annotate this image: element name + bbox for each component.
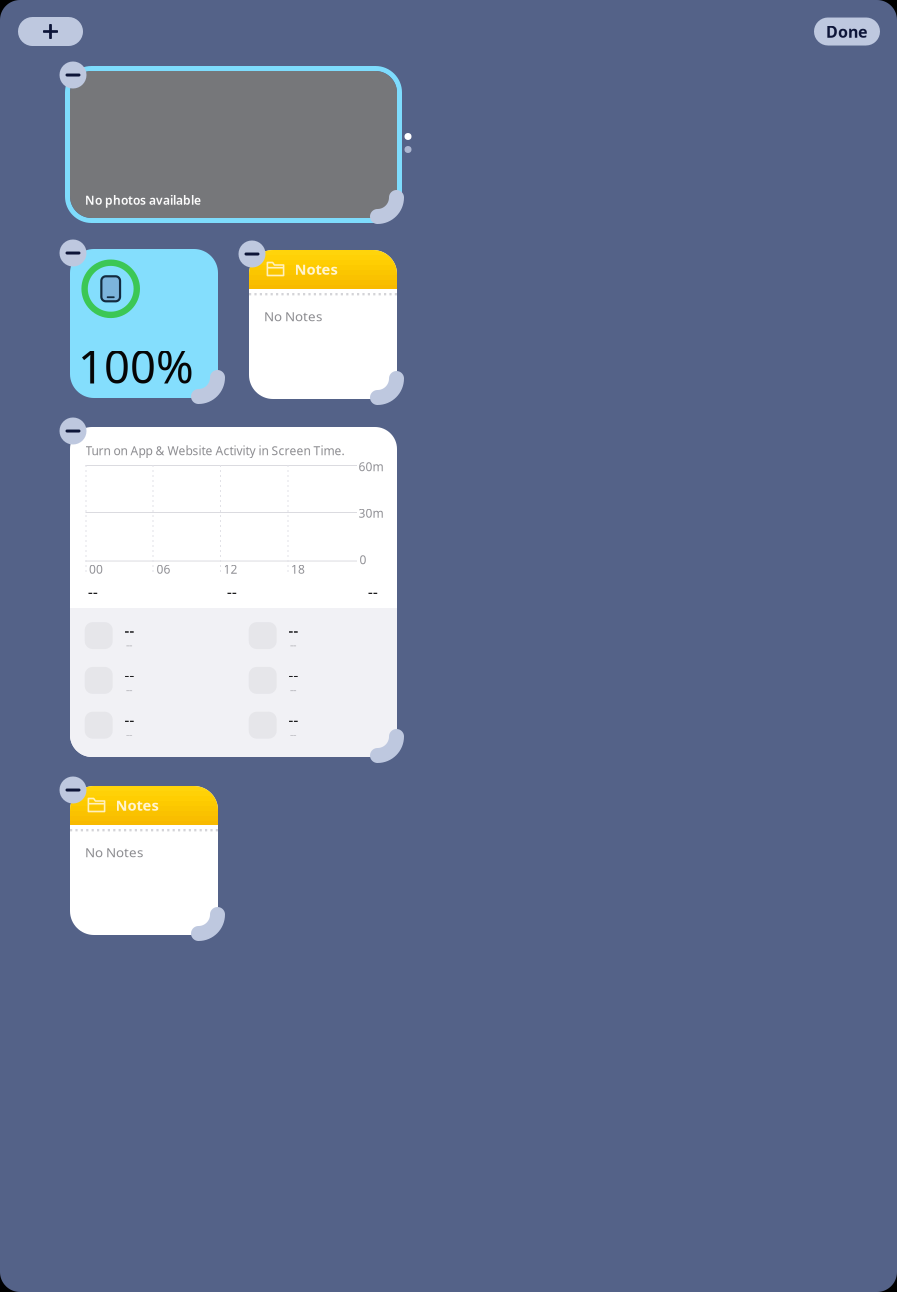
staticText: --: [288, 665, 298, 685]
button[interactable]: Resize widget: [168, 884, 228, 944]
button[interactable]: Remove widget: [59, 239, 86, 266]
button[interactable]: Remove widget: [238, 240, 265, 267]
staticText: --: [288, 710, 298, 729]
staticText: 06: [156, 561, 170, 577]
button[interactable]: Resize widget: [347, 167, 407, 227]
staticText: 30m: [358, 505, 383, 521]
staticText: 60m: [358, 458, 383, 474]
staticText: --: [227, 582, 237, 601]
button[interactable]: Remove widget: [59, 61, 86, 88]
staticText: --: [126, 638, 132, 652]
staticText: No photos available: [85, 192, 201, 208]
staticText: Notes: [115, 795, 158, 815]
button[interactable]: Done: [814, 17, 880, 45]
button[interactable]: Resize widget: [347, 348, 407, 408]
staticText: --: [290, 683, 296, 697]
button[interactable]: Add widget: [18, 17, 83, 46]
staticText: Notes: [294, 259, 337, 279]
staticText: --: [124, 620, 134, 640]
staticText: --: [124, 665, 134, 685]
staticText: --: [290, 638, 296, 652]
staticText: 12: [223, 561, 237, 577]
staticText: 18: [291, 561, 305, 577]
staticText: --: [288, 620, 298, 640]
staticText: Turn on App & Website Activity in Screen…: [85, 442, 344, 458]
staticText: No Notes: [264, 307, 322, 325]
staticText: No Notes: [85, 843, 143, 861]
staticText: --: [126, 727, 132, 742]
staticText: Done: [826, 21, 868, 42]
staticText: --: [88, 582, 98, 601]
button[interactable]: Resize widget: [168, 347, 228, 407]
button[interactable]: Resize widget: [347, 706, 407, 766]
staticText: --: [124, 710, 134, 729]
button[interactable]: Remove widget: [59, 417, 86, 444]
staticText: --: [126, 683, 132, 697]
button[interactable]: Remove widget: [59, 776, 86, 803]
staticText: 0: [359, 551, 366, 567]
staticText: --: [290, 727, 296, 742]
staticText: 100%: [78, 336, 194, 396]
staticText: --: [368, 582, 378, 601]
staticText: 00: [89, 561, 103, 577]
